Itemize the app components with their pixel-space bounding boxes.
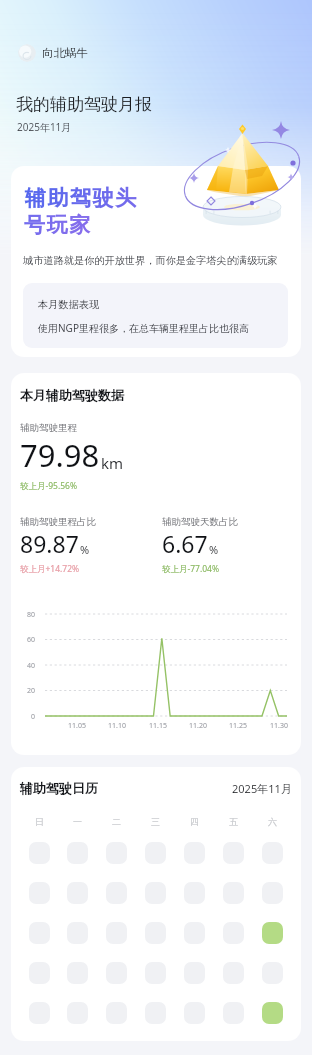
staticText: 日	[35, 816, 44, 827]
staticText: 2025年11月	[17, 120, 72, 134]
button[interactable]	[184, 922, 205, 944]
button[interactable]	[262, 962, 283, 984]
staticText: 89.87	[20, 528, 79, 559]
staticText: 二	[112, 816, 121, 827]
button[interactable]	[262, 882, 283, 904]
staticText: 11.30	[270, 721, 288, 731]
staticText: 40	[27, 661, 36, 671]
staticText: %	[80, 542, 90, 557]
button[interactable]	[223, 962, 244, 984]
staticText: 20	[27, 686, 36, 696]
button[interactable]	[106, 842, 127, 864]
button[interactable]	[29, 962, 50, 984]
button[interactable]: 向北蜗牛	[18, 44, 88, 62]
staticText: 本月数据表现	[38, 298, 100, 311]
staticText: 11.10	[108, 721, 126, 731]
staticText: 较上月-95.56%	[20, 480, 78, 492]
staticText: 城市道路就是你的开放世界，而你是金字塔尖的满级玩家	[23, 254, 278, 267]
button[interactable]	[145, 962, 166, 984]
staticText: 较上月-77.04%	[162, 563, 220, 575]
button[interactable]	[67, 842, 88, 864]
staticText: 本月辅助驾驶数据	[20, 387, 124, 403]
button[interactable]	[67, 1002, 88, 1024]
staticText: km	[101, 453, 124, 473]
staticText: %	[209, 542, 219, 557]
staticText: 五	[229, 816, 238, 827]
staticText: 一	[73, 816, 82, 827]
staticText: 11.25	[229, 721, 247, 731]
button[interactable]	[223, 922, 244, 944]
staticText: 辅助驾驶日历	[20, 780, 98, 796]
staticText: 79.98	[20, 434, 100, 476]
staticText: 使用NGP里程很多，在总车辆里程里占比也很高	[38, 321, 249, 335]
button[interactable]	[262, 1002, 283, 1024]
staticText: 辅助驾驶里程	[20, 422, 77, 434]
staticText: 三	[151, 816, 160, 827]
button[interactable]	[184, 882, 205, 904]
staticText: 11.15	[149, 721, 167, 731]
staticText: 辅助驾驶天数占比	[162, 516, 238, 528]
button[interactable]: 本月数据表现	[23, 283, 288, 348]
staticText: 11.20	[189, 721, 207, 731]
button[interactable]	[184, 842, 205, 864]
staticText: 辅助驾驶头	[24, 185, 137, 211]
button[interactable]	[67, 882, 88, 904]
button[interactable]	[67, 922, 88, 944]
staticText: 2025年11月	[232, 781, 292, 796]
button[interactable]	[223, 842, 244, 864]
button[interactable]	[145, 1002, 166, 1024]
staticText: 向北蜗牛	[42, 46, 88, 60]
staticText: 六	[268, 816, 277, 827]
staticText: 号玩家	[24, 212, 92, 238]
button[interactable]	[262, 922, 283, 944]
button[interactable]	[106, 1002, 127, 1024]
button[interactable]	[262, 842, 283, 864]
staticText: 60	[27, 635, 36, 645]
staticText: 11.05	[68, 721, 86, 731]
button[interactable]	[106, 922, 127, 944]
button[interactable]	[145, 922, 166, 944]
button[interactable]	[29, 842, 50, 864]
button[interactable]	[223, 1002, 244, 1024]
staticText: 0	[31, 712, 36, 722]
button[interactable]	[29, 1002, 50, 1024]
staticText: 我的辅助驾驶月报	[16, 94, 152, 115]
staticText: 80	[27, 610, 36, 620]
staticText: 较上月+14.72%	[20, 563, 80, 575]
button[interactable]	[223, 882, 244, 904]
staticText: 6.67	[162, 528, 208, 559]
staticText: 辅助驾驶里程占比	[20, 516, 96, 528]
button[interactable]	[67, 962, 88, 984]
button[interactable]	[184, 1002, 205, 1024]
button[interactable]	[29, 882, 50, 904]
button[interactable]	[184, 962, 205, 984]
button[interactable]	[145, 882, 166, 904]
button[interactable]	[145, 842, 166, 864]
staticText: 四	[190, 816, 199, 827]
button[interactable]	[106, 882, 127, 904]
button[interactable]	[29, 922, 50, 944]
button[interactable]	[106, 962, 127, 984]
